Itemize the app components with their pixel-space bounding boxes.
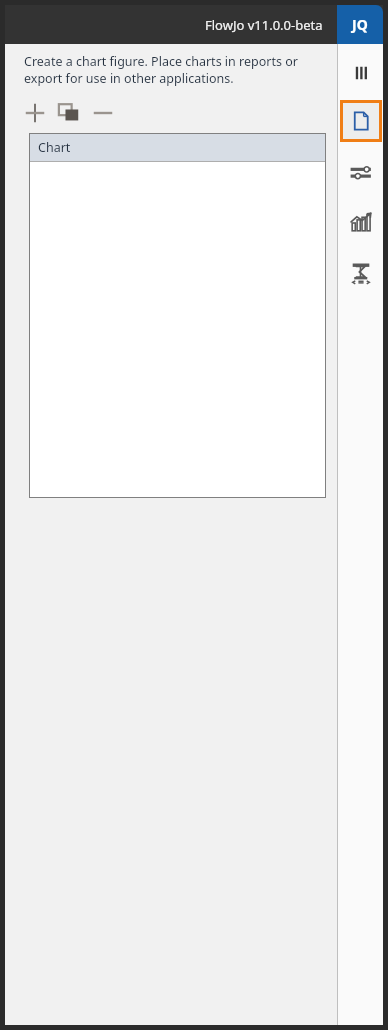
button[interactable]: Graphs: [340, 202, 382, 244]
staticText: Chart: [38, 139, 71, 156]
button[interactable]: Remove chart: [89, 99, 117, 127]
staticText: Create a chart figure. Place charts in r…: [24, 53, 323, 87]
button[interactable]: Chart: [29, 133, 326, 161]
button[interactable]: Duplicate chart: [55, 99, 83, 127]
button[interactable]: Chart figure: [343, 103, 379, 139]
button[interactable]: Add chart: [21, 99, 49, 127]
button[interactable]: Statistics: [340, 252, 382, 294]
button[interactable]: Adjust settings: [340, 152, 382, 194]
staticText: FlowJo v11.0.0-beta: [205, 16, 323, 34]
staticText: JQ: [352, 15, 368, 34]
button[interactable]: User JQ: [337, 5, 383, 44]
button[interactable]: Layout columns: [340, 52, 382, 94]
